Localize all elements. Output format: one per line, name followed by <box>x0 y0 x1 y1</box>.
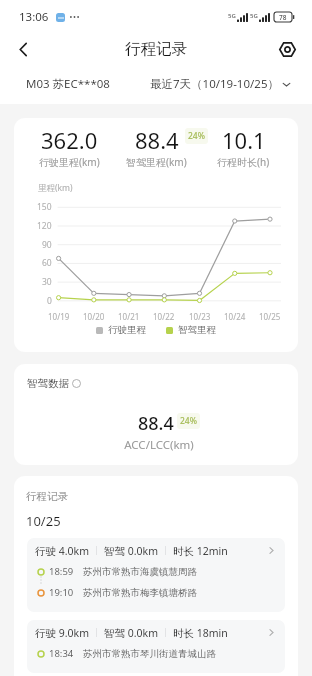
staticText: 10/20 <box>83 311 105 322</box>
staticText: 13:06 <box>19 9 49 25</box>
staticText: 行程记录 <box>26 490 68 503</box>
staticText: 智驾里程 <box>178 324 216 336</box>
button[interactable]: Back <box>6 34 40 64</box>
staticText: 10/24 <box>224 311 246 322</box>
staticText: 0 <box>47 295 52 307</box>
staticText: 10/19 <box>48 311 70 322</box>
staticText: 10/23 <box>189 311 211 322</box>
staticText: 时长 18min <box>173 626 228 640</box>
staticText: 苏州市常熟市梅李镇塘桥路 <box>83 587 197 599</box>
staticText: 行驶里程 <box>108 324 146 336</box>
staticText: 智驾数据 <box>27 377 69 390</box>
staticText: 24% <box>180 415 197 427</box>
staticText: 行驶里程(km) <box>39 155 100 169</box>
button[interactable]: 行驶 9.0km <box>27 620 285 673</box>
staticText: 智驾 0.0km <box>104 544 158 558</box>
staticText: 时长 12min <box>173 544 228 558</box>
staticText: 10.1 <box>222 125 266 155</box>
staticText: 88.4 <box>138 411 174 436</box>
button[interactable]: 最近7天（10/19-10/25） <box>150 76 312 92</box>
staticText: 苏州市常熟市琴川街道青城山路 <box>83 648 216 660</box>
staticText: 362.0 <box>41 125 98 155</box>
staticText: 行程时长(h) <box>217 155 270 169</box>
staticText: 10/25 <box>26 512 61 530</box>
staticText: 90 <box>42 239 52 251</box>
button[interactable]: Settings <box>273 35 301 63</box>
staticText: 5G <box>250 12 258 20</box>
staticText: 120 <box>37 220 52 232</box>
staticText: 苏州市常熟市海虞镇慧周路 <box>83 566 197 578</box>
staticText: 24% <box>188 130 205 142</box>
staticText: 最近7天（10/19-10/25） <box>150 76 279 92</box>
button[interactable]: 行驶 4.0km <box>27 538 285 612</box>
staticText: M03 苏EC***08 <box>26 76 110 92</box>
staticText: 30 <box>42 276 52 288</box>
button[interactable]: M03 苏EC***08 <box>0 76 110 92</box>
staticText: 10/22 <box>153 311 175 322</box>
staticText: 88.4 <box>135 125 179 155</box>
staticText: 10/21 <box>118 311 140 322</box>
staticText: 5G <box>228 12 236 20</box>
staticText: ACC/LCC(km) <box>17 437 298 453</box>
staticText: 行程记录 <box>125 39 187 59</box>
staticText: 60 <box>42 257 52 269</box>
staticText: 行驶 4.0km <box>35 544 89 558</box>
staticText: 行驶 9.0km <box>35 626 89 640</box>
staticText: 智驾 0.0km <box>104 626 158 640</box>
staticText: 18:34 <box>49 647 74 660</box>
staticText: 智驾里程(km) <box>126 155 187 169</box>
staticText: 里程(km) <box>38 182 73 194</box>
staticText: 78 <box>279 13 287 22</box>
staticText: 19:10 <box>49 586 74 599</box>
staticText: 150 <box>37 201 52 213</box>
staticText: 10/25 <box>259 311 281 322</box>
staticText: 18:59 <box>49 565 74 578</box>
